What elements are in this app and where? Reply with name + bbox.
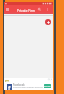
button[interactable]: Add	[45, 19, 51, 25]
staticText: Install	[44, 85, 51, 88]
button[interactable]: More options	[44, 6, 51, 13]
staticText: Connect with friends and the	[13, 86, 43, 89]
staticText: Facebook	[13, 83, 25, 87]
staticText: f	[8, 84, 11, 90]
staticText: Ad	[6, 80, 9, 82]
button[interactable]: Ad	[4, 78, 53, 90]
staticText: Private Firm	[17, 9, 36, 13]
button[interactable]: Install	[44, 84, 51, 88]
button[interactable]: Menu	[4, 6, 11, 13]
button[interactable]: Search	[36, 6, 43, 13]
